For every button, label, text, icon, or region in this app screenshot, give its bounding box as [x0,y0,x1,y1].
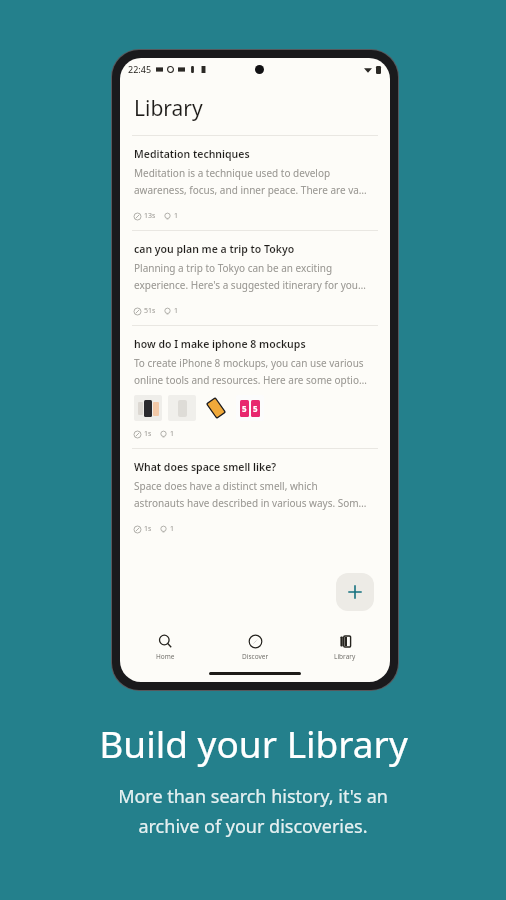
staticText: More than search history, it's an [118,784,388,809]
staticText: can you plan me a trip to Tokyo [134,242,295,256]
staticText: Discover [242,652,269,661]
staticText: Planning a trip to Tokyo can be an excit… [134,261,333,275]
button[interactable]: Home [120,630,210,665]
button[interactable]: Meditation techniques [120,136,390,230]
button[interactable]: Discover [210,630,300,665]
staticText: awareness, focus, and inner peace. There… [134,183,367,197]
staticText: Space does have a distinct smell, which [134,479,318,493]
staticText: 1 [174,306,179,316]
staticText: 1 [174,211,179,221]
staticText: 13s [144,211,156,221]
staticText: Meditation is a technique used to develo… [134,166,331,180]
staticText: online tools and resources. Here are som… [134,373,367,387]
button[interactable]: how do I make iphone 8 mockups [120,326,390,448]
staticText: Build your Library [99,718,408,768]
staticText: how do I make iphone 8 mockups [134,337,306,351]
staticText: experience. Here's a suggested itinerary… [134,278,366,292]
staticText: Home [156,652,175,661]
staticText: 5 [253,403,258,414]
staticText: Meditation techniques [134,147,250,161]
staticText: 5 [242,403,247,414]
staticText: What does space smell like? [134,460,277,474]
staticText: 1 [170,524,175,534]
staticText: 1s [144,429,152,439]
staticText: 1 [170,429,175,439]
staticText: 22:45 [128,63,152,75]
staticText: 1s [144,524,152,534]
button[interactable]: What does space smell like? [120,449,390,543]
button[interactable]: Library [300,630,390,665]
staticText: 51s [144,306,156,316]
staticText: Library [334,652,356,661]
staticText: Library [134,94,203,123]
staticText: To create iPhone 8 mockups, you can use … [134,356,364,370]
button[interactable]: can you plan me a trip to Tokyo [120,231,390,325]
staticText: astronauts have described in various way… [134,496,367,510]
button[interactable]: New chat [336,573,374,611]
staticText: archive of your discoveries. [138,814,368,839]
